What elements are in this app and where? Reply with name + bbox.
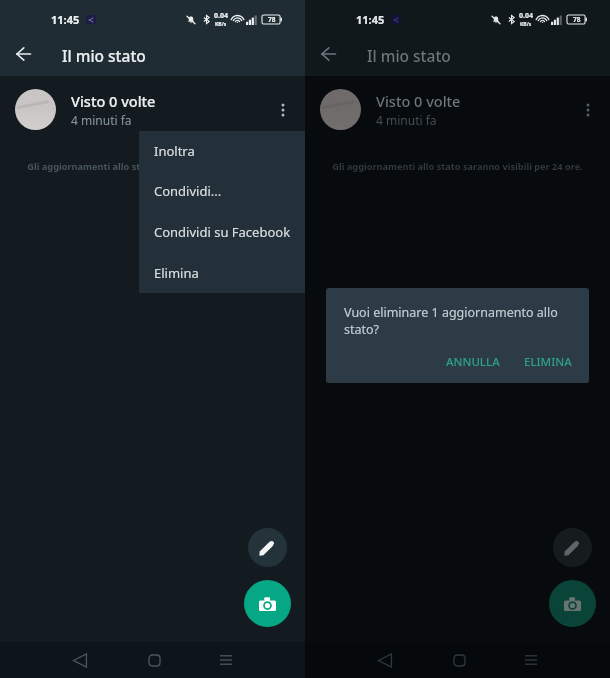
button[interactable]: Camera: [549, 580, 596, 627]
button[interactable]: Visto 0 volte: [0, 76, 305, 143]
button[interactable]: Write status update: [248, 528, 287, 567]
staticText: Gli aggiornamenti allo stato saranno vis…: [27, 160, 278, 173]
staticText: Inoltra: [154, 142, 195, 160]
staticText: Il mio stato: [367, 45, 451, 66]
staticText: KB/s: [215, 21, 227, 28]
staticText: 11:45: [356, 12, 385, 27]
button[interactable]: More options: [261, 88, 305, 132]
button[interactable]: Back: [305, 30, 351, 76]
staticText: ELIMINA: [524, 354, 572, 370]
staticText: 11:45: [51, 12, 80, 27]
button[interactable]: Back: [369, 642, 401, 678]
button[interactable]: Camera: [244, 580, 291, 627]
staticText: 78: [573, 15, 581, 24]
button[interactable]: Visto 0 volte: [305, 76, 610, 143]
button[interactable]: Back: [0, 30, 46, 76]
button[interactable]: Home: [138, 642, 170, 678]
staticText: Gli aggiornamenti allo stato saranno vis…: [332, 160, 583, 173]
button[interactable]: ELIMINA: [515, 349, 581, 375]
staticText: Visto 0 volte: [71, 91, 156, 111]
button[interactable]: Inoltra: [139, 131, 305, 171]
staticText: KB/s: [520, 21, 532, 28]
staticText: 4 minuti fa: [71, 112, 132, 128]
button[interactable]: Home: [443, 642, 475, 678]
staticText: 78: [268, 15, 276, 24]
button[interactable]: Condividi...: [139, 171, 305, 211]
staticText: Condividi...: [154, 182, 222, 200]
staticText: 0.04: [519, 11, 533, 21]
button[interactable]: ANNULLA: [437, 349, 509, 375]
staticText: Il mio stato: [62, 45, 146, 66]
staticText: 4 minuti fa: [376, 112, 437, 128]
staticText: Visto 0 volte: [376, 91, 461, 111]
button[interactable]: Condividi su Facebook: [139, 211, 305, 252]
button[interactable]: Back: [64, 642, 96, 678]
staticText: Elimina: [154, 264, 199, 282]
button[interactable]: Write status update: [553, 528, 592, 567]
button[interactable]: Elimina: [139, 252, 305, 293]
button[interactable]: Recent apps: [210, 642, 242, 678]
button[interactable]: More options: [566, 88, 610, 132]
staticText: Condividi su Facebook: [154, 223, 291, 241]
staticText: ANNULLA: [446, 354, 500, 370]
button[interactable]: Recent apps: [515, 642, 547, 678]
staticText: Vuoi eliminare 1 aggiornamento allo stat…: [344, 304, 573, 337]
staticText: 0.04: [214, 11, 228, 21]
